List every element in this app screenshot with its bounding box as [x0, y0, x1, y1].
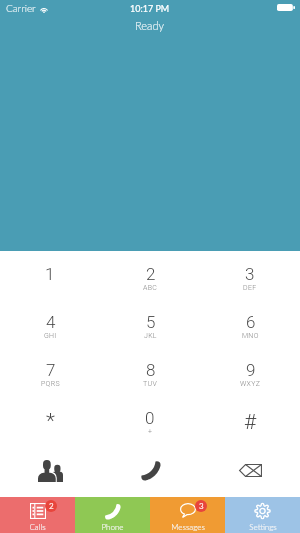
staticText: Messages: [171, 522, 205, 532]
button[interactable]: 9: [200, 360, 300, 408]
staticText: 3: [245, 264, 255, 284]
staticText: WXYZ: [240, 380, 261, 388]
staticText: 3: [199, 501, 204, 511]
staticText: 9: [246, 360, 256, 380]
button[interactable]: 2: [100, 264, 200, 312]
staticText: 1: [45, 264, 55, 284]
button[interactable]: 0: [100, 408, 200, 456]
button[interactable]: 6: [200, 312, 300, 360]
staticText: GHI: [44, 332, 57, 340]
staticText: *: [46, 409, 55, 434]
staticText: Carrier: [6, 2, 36, 14]
button[interactable]: Contacts: [0, 450, 100, 491]
button[interactable]: 7: [0, 360, 100, 408]
staticText: Calls: [29, 522, 46, 532]
staticText: 2: [49, 501, 54, 511]
button[interactable]: Settings: [225, 497, 300, 533]
staticText: DEF: [243, 284, 257, 292]
staticText: +: [148, 428, 153, 436]
button[interactable]: Backspace: [200, 450, 300, 491]
staticText: 2: [146, 264, 156, 284]
staticText: #: [244, 410, 257, 435]
button[interactable]: #: [200, 408, 300, 456]
button[interactable]: 8: [100, 360, 200, 408]
staticText: 5: [146, 312, 156, 332]
staticText: 7: [46, 360, 56, 380]
staticText: 6: [246, 312, 256, 332]
staticText: 10:17 PM: [130, 3, 170, 14]
button[interactable]: 3: [150, 497, 225, 533]
button[interactable]: 2: [0, 497, 75, 533]
button[interactable]: Phone: [75, 497, 150, 533]
staticText: PQRS: [41, 380, 60, 388]
button[interactable]: 4: [0, 312, 100, 360]
staticText: ABC: [143, 284, 158, 292]
staticText: Settings: [249, 522, 277, 532]
button[interactable]: 3: [200, 264, 300, 312]
staticText: JKL: [144, 332, 157, 340]
staticText: 4: [46, 312, 56, 332]
staticText: 8: [146, 360, 156, 380]
button[interactable]: *: [0, 408, 100, 456]
staticText: Ready: [135, 19, 164, 32]
button[interactable]: 5: [100, 312, 200, 360]
button[interactable]: 1: [0, 264, 100, 312]
staticText: 0: [145, 408, 155, 428]
staticText: Phone: [101, 522, 124, 532]
button[interactable]: Call: [100, 450, 200, 491]
staticText: MNO: [242, 332, 259, 340]
staticText: TUV: [143, 380, 158, 388]
